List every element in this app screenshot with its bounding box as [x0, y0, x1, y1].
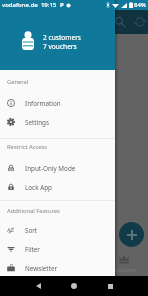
button[interactable]: Search: [112, 14, 128, 30]
button[interactable]: Information: [0, 93, 115, 112]
staticText: Additional Features: [7, 207, 60, 215]
staticText: AZ: [7, 226, 15, 234]
staticText: Vouchers: [112, 266, 136, 273]
button[interactable]: Newsletter: [0, 258, 115, 277]
button[interactable]: AZ: [0, 220, 115, 239]
staticText: 84%: [134, 1, 146, 9]
staticText: Input-Only Mode: [25, 164, 76, 173]
staticText: Settings: [25, 118, 49, 127]
staticText: Restrict Access: [7, 143, 48, 151]
staticText: Lock App: [25, 183, 52, 192]
button[interactable]: Home: [67, 276, 81, 296]
button[interactable]: Add voucher: [119, 222, 144, 247]
staticText: vodafone.de 19:15: [2, 1, 57, 9]
staticText: 2 customers: [43, 33, 82, 42]
staticText: 7 vouchers: [43, 42, 77, 51]
staticText: Information: [25, 99, 61, 108]
staticText: General: [7, 78, 29, 86]
button[interactable]: Back: [31, 276, 45, 296]
button[interactable]: Refresh: [132, 14, 148, 30]
button[interactable]: Settings: [0, 112, 115, 131]
staticText: Sort: [25, 226, 38, 235]
staticText: P: [60, 1, 64, 9]
button[interactable]: Recents: [103, 276, 117, 296]
button[interactable]: Lock App: [0, 177, 115, 196]
button[interactable]: Filter: [0, 239, 115, 258]
staticText: Newsletter: [25, 264, 58, 273]
staticText: Filter: [25, 245, 40, 254]
button[interactable]: Input-Only Mode: [0, 158, 115, 177]
button[interactable]: Vouchers: [106, 255, 142, 273]
